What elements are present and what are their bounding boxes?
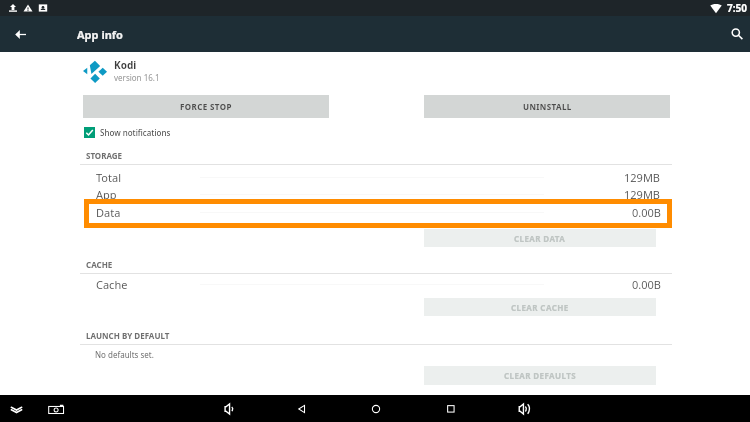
button[interactable]: UNINSTALL: [424, 95, 670, 118]
button[interactable]: Cache: [84, 277, 661, 292]
staticText: FORCE STOP: [180, 101, 232, 112]
button[interactable]: Back: [290, 397, 314, 421]
staticText: App: [96, 187, 117, 202]
staticText: CACHE: [86, 259, 113, 270]
button[interactable]: Total: [84, 170, 661, 185]
button[interactable]: Volume down: [217, 397, 241, 421]
staticText: UNINSTALL: [523, 101, 572, 112]
button[interactable]: CLEAR DEFAULTS: [424, 366, 656, 385]
button[interactable]: CLEAR CACHE: [424, 298, 656, 316]
staticText: Cache: [96, 277, 128, 292]
button[interactable]: Screenshot: [43, 396, 69, 422]
staticText: 129MB: [624, 170, 661, 185]
button[interactable]: Volume up: [512, 397, 536, 421]
staticText: App info: [77, 27, 123, 42]
button[interactable]: Search: [724, 21, 750, 47]
staticText: version 16.1: [114, 72, 160, 83]
staticText: CLEAR DEFAULTS: [504, 370, 577, 381]
staticText: CLEAR DATA: [514, 233, 566, 244]
button[interactable]: App: [84, 187, 661, 202]
staticText: 0.00B: [632, 277, 661, 292]
staticText: STORAGE: [86, 150, 123, 161]
staticText: CLEAR CACHE: [511, 302, 569, 313]
button[interactable]: Data: [84, 205, 661, 220]
button[interactable]: FORCE STOP: [83, 95, 329, 118]
staticText: No defaults set.: [95, 349, 154, 360]
button[interactable]: Hide navigation: [3, 396, 29, 422]
staticText: 129MB: [624, 187, 661, 202]
staticText: Show notifications: [100, 127, 171, 138]
button[interactable]: CLEAR DATA: [424, 229, 656, 247]
button[interactable]: Home: [364, 397, 388, 421]
button[interactable]: Recents: [439, 397, 463, 421]
staticText: 7:50: [727, 1, 747, 15]
staticText: Total: [96, 170, 121, 185]
staticText: LAUNCH BY DEFAULT: [86, 330, 170, 341]
button[interactable]: Show notifications: [84, 127, 171, 138]
staticText: Data: [96, 205, 121, 220]
button[interactable]: Back: [6, 20, 34, 48]
staticText: Kodi: [114, 58, 137, 72]
staticText: 0.00B: [632, 205, 661, 220]
